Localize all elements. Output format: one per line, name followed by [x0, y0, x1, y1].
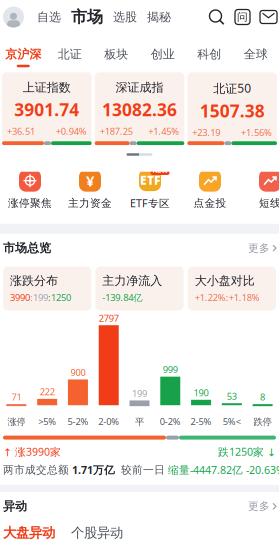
staticText: 2-5%: [191, 415, 212, 428]
staticText: 深证成指: [115, 80, 163, 95]
staticText: 市场: [71, 7, 103, 27]
staticText: 8: [260, 391, 265, 403]
staticText: 跌停: [254, 416, 272, 428]
staticText: ETF专区: [130, 196, 170, 210]
button[interactable]: 更多: [248, 500, 276, 513]
button[interactable]: 全球: [232, 34, 279, 69]
staticText: 5-2%: [67, 415, 88, 428]
staticText: 53: [227, 390, 237, 402]
staticText: 问: [237, 10, 248, 23]
staticText: 缩量-4447.82亿 -20.63%: [168, 463, 279, 477]
staticText: 科创: [197, 47, 221, 62]
staticText: 两市成交总额: [3, 463, 69, 476]
button[interactable]: 涨跌分布: [3, 266, 91, 311]
staticText: 平: [135, 416, 144, 428]
staticText: 更多: [248, 242, 270, 255]
staticText: 900: [70, 366, 85, 378]
staticText: 3990: [10, 291, 30, 304]
staticText: 选股: [113, 10, 137, 24]
button[interactable]: 京沪深: [0, 34, 46, 69]
staticText: 大盘异动: [3, 525, 55, 541]
staticText: +1.45%: [148, 125, 179, 137]
button[interactable]: 选股: [108, 10, 142, 24]
staticText: :199: [30, 291, 48, 304]
staticText: 北证50: [213, 80, 251, 96]
button[interactable]: 大小盘对比: [188, 266, 276, 311]
staticText: 京沪深: [5, 47, 41, 62]
staticText: 0-2%: [160, 415, 181, 428]
staticText: 71: [11, 391, 21, 403]
button[interactable]: 板块: [93, 34, 139, 69]
staticText: 主力净流入: [102, 273, 162, 288]
button[interactable]: ¥: [60, 170, 120, 210]
staticText: ETF: [140, 172, 160, 188]
staticText: 大小盘对比: [195, 273, 255, 288]
staticText: 异动: [3, 499, 27, 514]
staticText: 1507.38: [200, 99, 265, 122]
staticText: 5%<: [223, 415, 241, 428]
staticText: 190: [194, 386, 209, 399]
staticText: +187.25: [100, 125, 133, 137]
button[interactable]: 揭秘: [142, 10, 176, 24]
staticText: ↑ 涨3990家: [3, 445, 61, 459]
staticText: 涨停聚焦: [8, 197, 52, 210]
staticText: +1.56%: [241, 126, 272, 139]
staticText: 999: [163, 363, 178, 376]
staticText: 3901.74: [14, 98, 79, 121]
button[interactable]: 市场: [66, 7, 108, 27]
button[interactable]: 搜索: [203, 8, 230, 25]
staticText: -139.84亿: [102, 291, 142, 304]
staticText: 199: [132, 387, 147, 399]
button[interactable]: 问股: [230, 9, 255, 24]
staticText: 市场总览: [3, 241, 51, 255]
button[interactable]: 涨停聚焦: [0, 170, 60, 210]
staticText: 板块: [104, 47, 128, 62]
staticText: +23.19: [192, 126, 220, 139]
button[interactable]: 个股异动: [71, 525, 123, 541]
staticText: 揭秘: [147, 10, 171, 24]
staticText: :1250: [48, 291, 71, 304]
staticText: 涨跌分布: [10, 273, 58, 288]
staticText: 北证: [58, 47, 82, 62]
button[interactable]: 主力净流入: [95, 266, 184, 311]
staticText: 涨停: [7, 416, 25, 428]
staticText: 1.71万亿: [69, 463, 115, 477]
button[interactable]: 深证成指: [95, 72, 184, 145]
staticText: 2797: [99, 312, 119, 324]
button[interactable]: 点金投: [180, 170, 240, 210]
staticText: 222: [40, 385, 55, 398]
staticText: +0.94%: [56, 125, 87, 137]
button[interactable]: 自选: [32, 10, 66, 24]
staticText: 主力资金: [68, 197, 112, 210]
button[interactable]: 短线: [240, 170, 279, 210]
staticText: 上证指数: [23, 80, 71, 95]
staticText: 跌1250家 ↓: [218, 445, 276, 459]
staticText: 自选: [37, 10, 61, 24]
button[interactable]: 我的: [0, 6, 32, 27]
staticText: 13082.36: [102, 98, 177, 121]
staticText: >5%: [38, 415, 56, 428]
staticText: 个股异动: [71, 525, 123, 541]
button[interactable]: 北证50: [187, 72, 277, 145]
button[interactable]: ETF: [120, 169, 180, 210]
button[interactable]: 更多: [248, 242, 276, 255]
staticText: 创业: [151, 47, 175, 62]
staticText: +1.22%:+1.18%: [195, 291, 260, 304]
staticText: 较前一日: [115, 463, 168, 476]
button[interactable]: 科创: [186, 34, 232, 69]
staticText: 点金投: [193, 197, 226, 210]
staticText: 短线: [259, 197, 279, 210]
button[interactable]: 创业: [139, 34, 186, 69]
staticText: NEW: [152, 166, 167, 174]
button[interactable]: 大盘异动: [3, 525, 55, 541]
staticText: 全球: [244, 47, 268, 62]
staticText: +36.51: [7, 125, 35, 137]
button[interactable]: 消息: [255, 10, 279, 23]
staticText: ¥: [86, 171, 94, 190]
button[interactable]: 北证: [46, 34, 93, 69]
staticText: 更多: [248, 500, 270, 513]
staticText: 2-0%: [98, 415, 119, 428]
button[interactable]: 上证指数: [2, 72, 92, 145]
